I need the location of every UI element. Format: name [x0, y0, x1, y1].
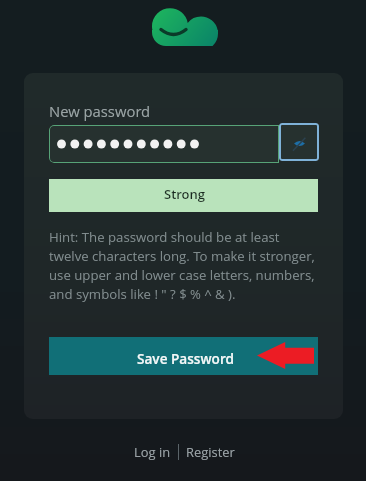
- staticText: Hint: The password should be at least tw…: [49, 228, 321, 303]
- staticText: Strong: [164, 185, 206, 203]
- button[interactable]: Log in: [127, 443, 178, 461]
- button[interactable]: Save Password: [49, 337, 318, 375]
- button[interactable]: Show password: [279, 123, 319, 161]
- staticText: Log in: [134, 443, 171, 461]
- other: App logo: [151, 8, 219, 48]
- staticText: Save Password: [137, 349, 234, 368]
- staticText: Register: [186, 443, 235, 461]
- button[interactable]: Register: [179, 443, 242, 461]
- staticText: New password: [49, 101, 151, 121]
- button[interactable]: [49, 125, 279, 163]
